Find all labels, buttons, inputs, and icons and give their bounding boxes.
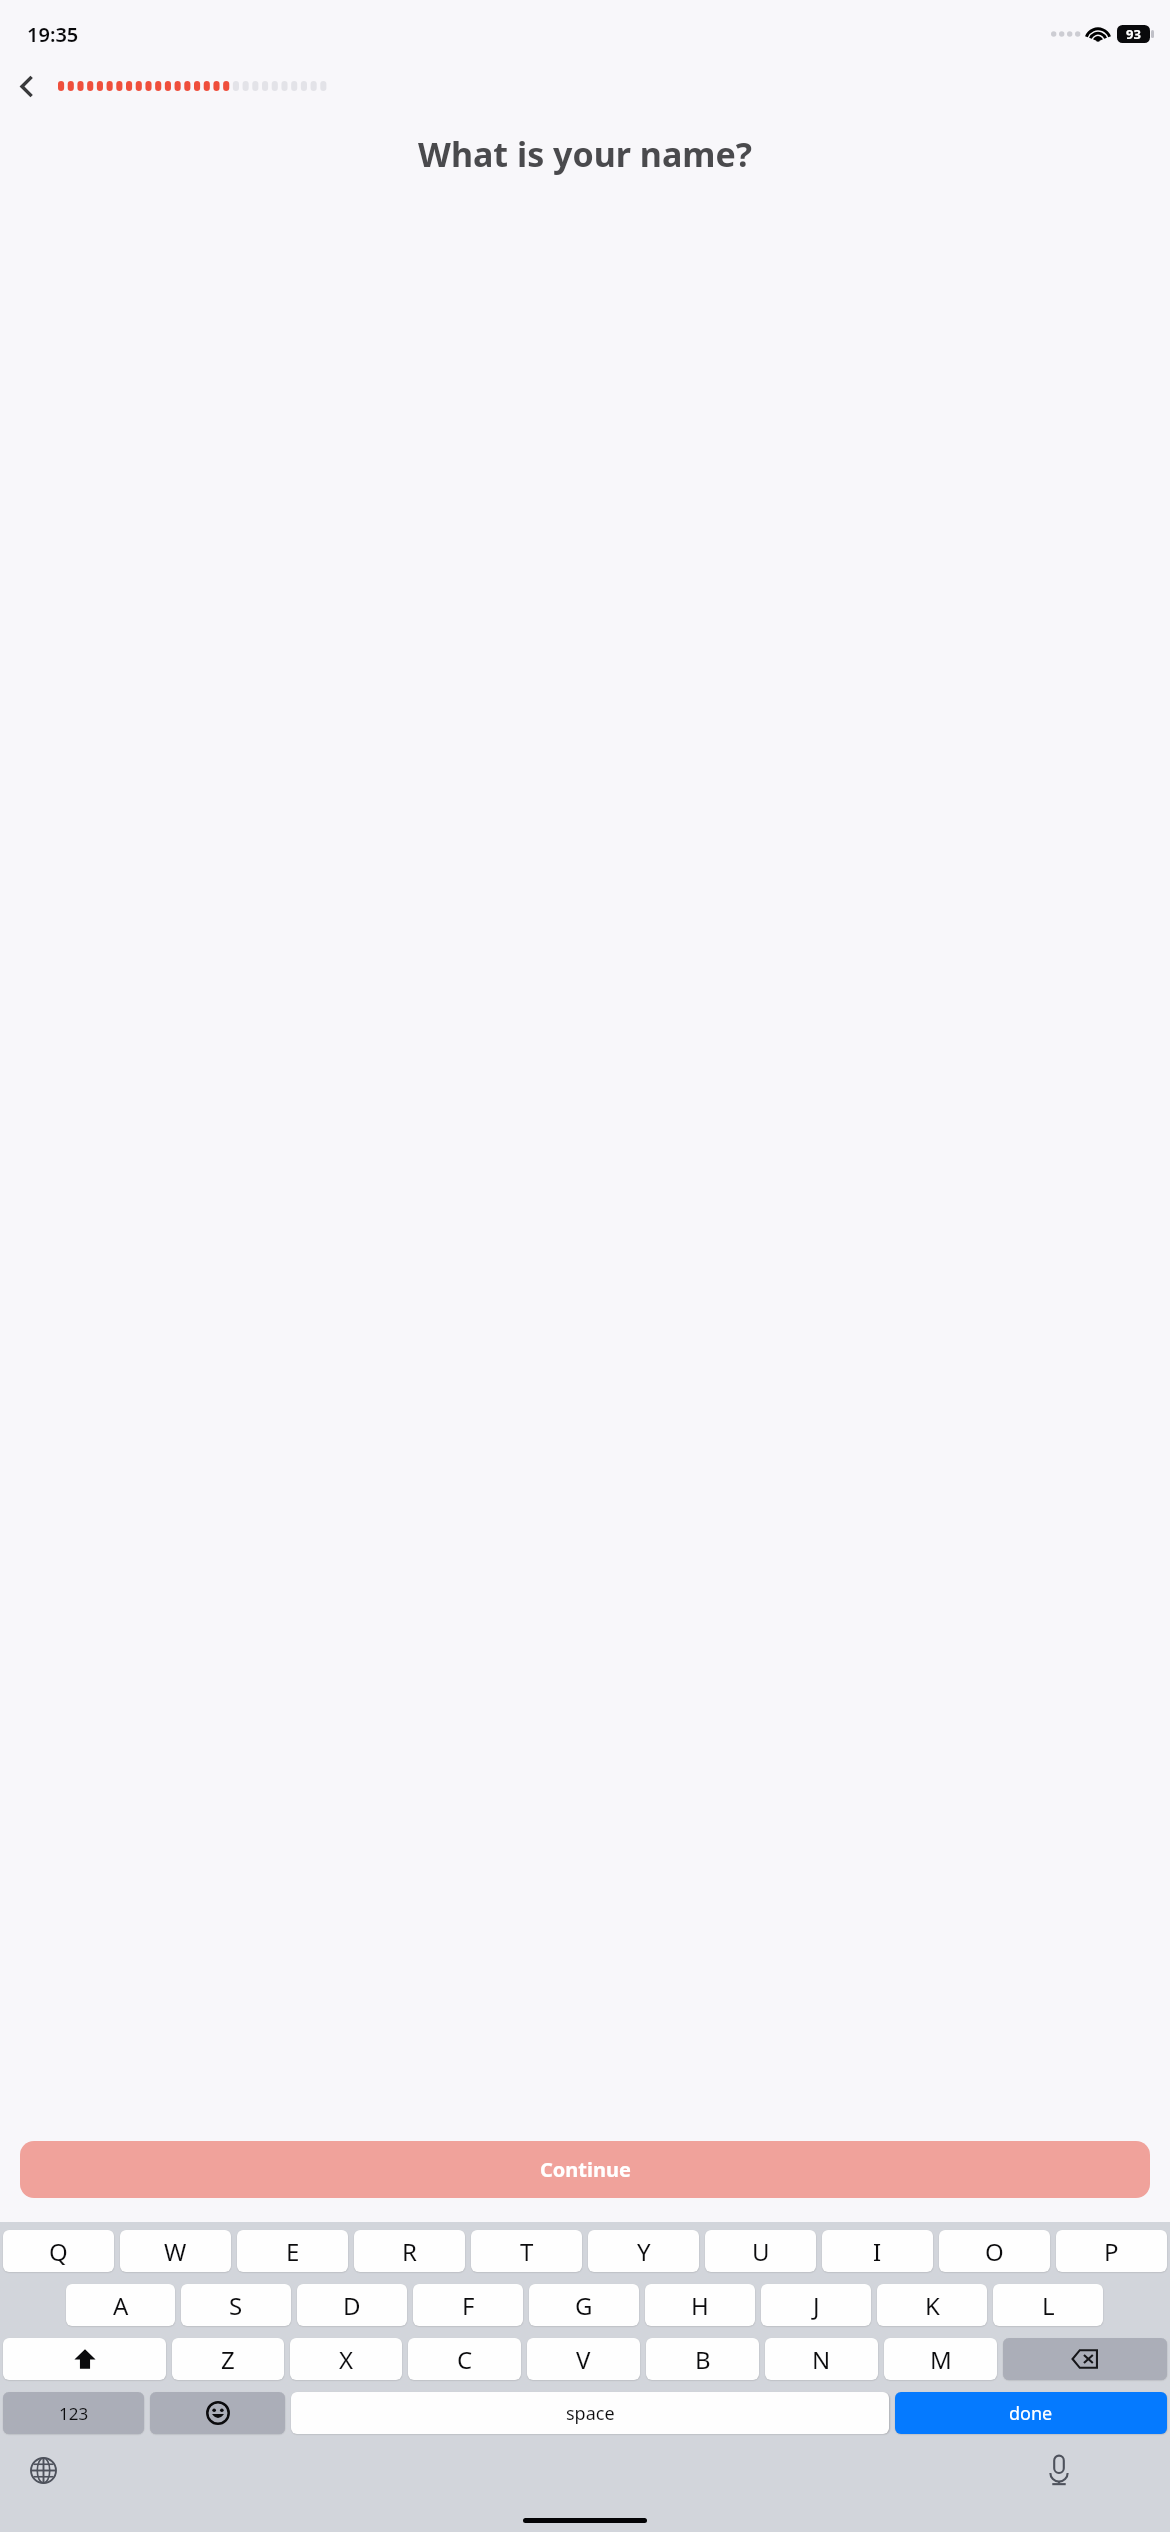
staticText: Continue: [540, 2156, 631, 2183]
staticText: A: [113, 2289, 129, 2322]
button[interactable]: V: [527, 2338, 640, 2380]
staticText: U: [752, 2235, 770, 2268]
button[interactable]: A: [66, 2284, 175, 2326]
button[interactable]: done: [895, 2392, 1167, 2434]
button[interactable]: L: [993, 2284, 1103, 2326]
button[interactable]: T: [471, 2230, 582, 2272]
button[interactable]: Shift: [3, 2338, 166, 2380]
button[interactable]: 123: [3, 2392, 144, 2434]
button[interactable]: P: [1056, 2230, 1167, 2272]
staticText: W: [164, 2235, 187, 2268]
button[interactable]: Change keyboard: [17, 2444, 69, 2496]
staticText: N: [812, 2343, 831, 2376]
staticText: H: [691, 2289, 709, 2322]
staticText: P: [1104, 2235, 1119, 2268]
button[interactable]: W: [120, 2230, 231, 2272]
staticText: S: [229, 2289, 243, 2322]
staticText: Z: [221, 2343, 235, 2376]
button[interactable]: B: [646, 2338, 759, 2380]
staticText: R: [402, 2235, 417, 2268]
staticText: X: [339, 2343, 354, 2376]
button[interactable]: G: [529, 2284, 639, 2326]
button[interactable]: N: [765, 2338, 878, 2380]
staticText: F: [462, 2289, 475, 2322]
staticText: V: [576, 2343, 591, 2376]
button[interactable]: K: [877, 2284, 987, 2326]
button[interactable]: Back: [3, 63, 51, 109]
button[interactable]: J: [761, 2284, 871, 2326]
staticText: 93: [1126, 25, 1141, 43]
button[interactable]: Z: [172, 2338, 284, 2380]
staticText: J: [813, 2289, 820, 2322]
button[interactable]: Emoji: [150, 2392, 285, 2434]
staticText: B: [695, 2343, 711, 2376]
button[interactable]: Backspace: [1003, 2338, 1167, 2380]
staticText: E: [286, 2235, 300, 2268]
button[interactable]: Q: [3, 2230, 114, 2272]
staticText: done: [1009, 2401, 1053, 2426]
button[interactable]: space: [291, 2392, 889, 2434]
button[interactable]: F: [413, 2284, 523, 2326]
staticText: C: [457, 2343, 473, 2376]
staticText: M: [930, 2343, 952, 2376]
button[interactable]: R: [354, 2230, 465, 2272]
button[interactable]: Continue: [20, 2141, 1150, 2198]
staticText: Q: [49, 2235, 68, 2268]
staticText: L: [1042, 2289, 1055, 2322]
staticText: D: [343, 2289, 361, 2322]
button[interactable]: C: [408, 2338, 521, 2380]
staticText: 19:35: [27, 21, 79, 48]
button[interactable]: U: [705, 2230, 816, 2272]
staticText: K: [925, 2289, 940, 2322]
button[interactable]: M: [884, 2338, 997, 2380]
staticText: G: [575, 2289, 593, 2322]
button[interactable]: Dictate: [1033, 2444, 1085, 2496]
staticText: 123: [59, 2402, 89, 2425]
button[interactable]: E: [237, 2230, 348, 2272]
button[interactable]: I: [822, 2230, 933, 2272]
staticText: I: [873, 2235, 882, 2268]
staticText: Y: [637, 2235, 651, 2268]
staticText: T: [520, 2235, 534, 2268]
button[interactable]: O: [939, 2230, 1050, 2272]
button[interactable]: H: [645, 2284, 755, 2326]
staticText: What is your name?: [20, 131, 1150, 177]
staticText: O: [985, 2235, 1004, 2268]
button[interactable]: S: [181, 2284, 291, 2326]
button[interactable]: Y: [588, 2230, 699, 2272]
button[interactable]: X: [290, 2338, 402, 2380]
staticText: space: [566, 2401, 615, 2426]
button[interactable]: D: [297, 2284, 407, 2326]
